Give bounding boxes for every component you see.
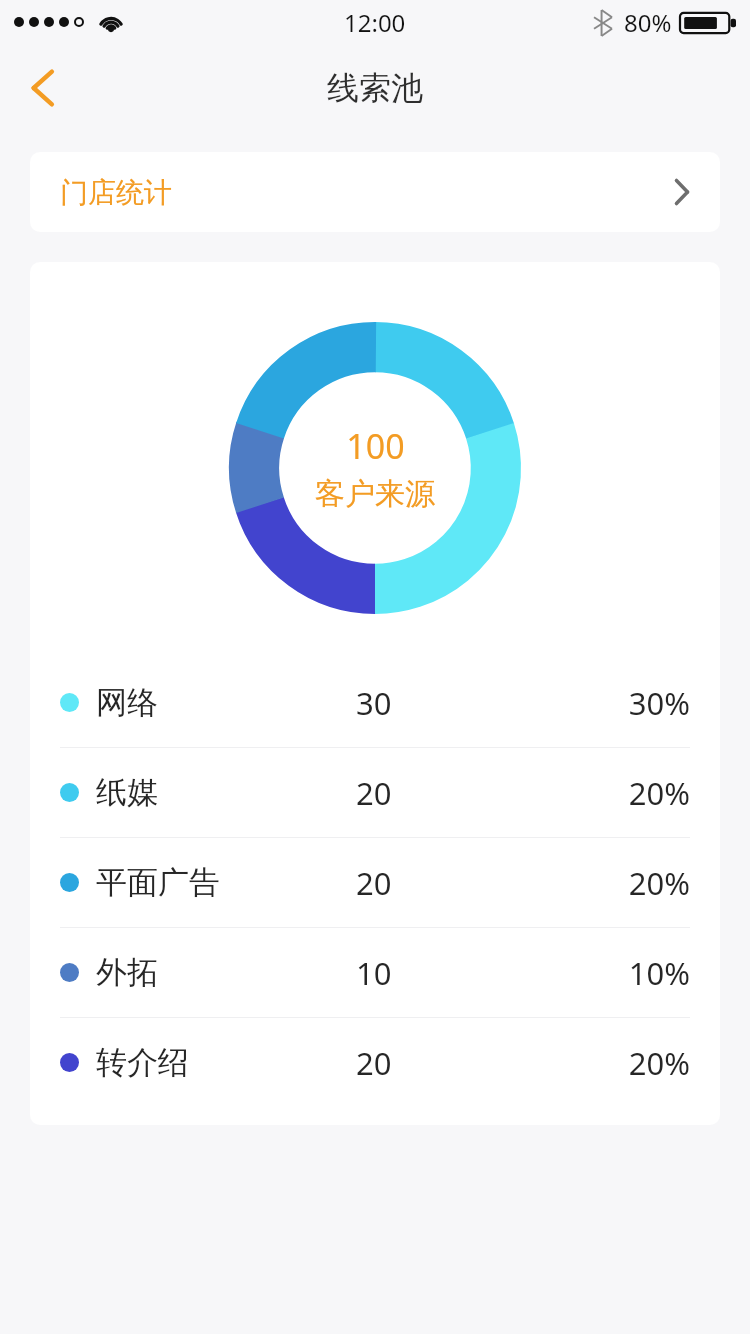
staticText: 网络	[96, 683, 158, 722]
staticText: 门店统计	[60, 175, 172, 210]
staticText: 20	[356, 772, 392, 814]
button[interactable]: 平面广告	[60, 838, 690, 927]
staticText: 100	[346, 423, 405, 469]
staticText: 20%	[628, 862, 690, 904]
staticText: 客户来源	[315, 475, 435, 513]
staticText: 平面广告	[96, 863, 220, 902]
button[interactable]: 门店统计	[30, 152, 720, 232]
staticText: 20	[356, 862, 392, 904]
staticText: 10	[356, 952, 392, 994]
staticText: 12:00	[344, 6, 406, 39]
staticText: 20	[356, 1042, 392, 1084]
button[interactable]: 网络	[60, 658, 690, 747]
button[interactable]: 外拓	[60, 928, 690, 1017]
staticText: 30%	[628, 682, 690, 724]
staticText: 20%	[628, 1042, 690, 1084]
staticText: 20%	[628, 772, 690, 814]
button[interactable]: 转介绍	[60, 1018, 690, 1107]
staticText: 10%	[628, 952, 690, 994]
staticText: 80%	[624, 6, 672, 39]
staticText: 纸媒	[96, 773, 158, 812]
button[interactable]: 纸媒	[60, 748, 690, 837]
staticText: 转介绍	[96, 1043, 189, 1082]
button[interactable]: Back	[14, 60, 70, 116]
staticText: 线索池	[327, 68, 423, 108]
staticText: 外拓	[96, 953, 158, 992]
staticText: 30	[356, 682, 392, 724]
